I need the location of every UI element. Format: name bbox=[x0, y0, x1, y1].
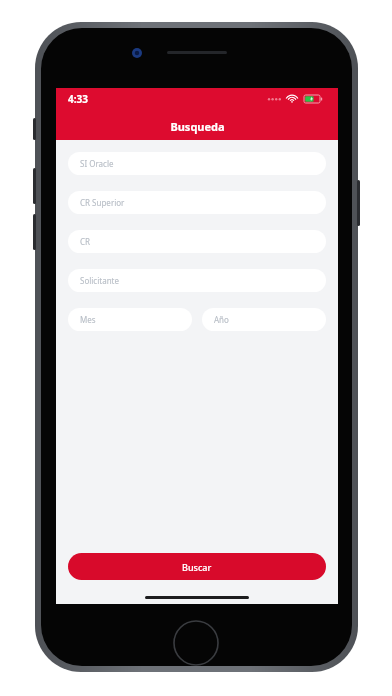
button[interactable]: CR Superior bbox=[68, 191, 326, 214]
staticText: SI Oracle bbox=[80, 158, 114, 169]
button[interactable]: Buscar bbox=[68, 553, 326, 580]
staticText: Busqueda bbox=[170, 119, 225, 134]
staticText: Buscar bbox=[182, 561, 212, 573]
button[interactable]: SI Oracle bbox=[68, 152, 326, 175]
staticText: Año bbox=[214, 314, 229, 325]
button[interactable]: CR bbox=[68, 230, 326, 253]
button[interactable]: Mes bbox=[68, 308, 192, 331]
staticText: Solicitante bbox=[80, 275, 119, 286]
button[interactable]: Año bbox=[202, 308, 326, 331]
button[interactable]: Solicitante bbox=[68, 269, 326, 292]
staticText: 4:33 bbox=[68, 92, 88, 106]
staticText: CR Superior bbox=[80, 197, 125, 208]
staticText: CR bbox=[80, 236, 91, 247]
staticText: Mes bbox=[80, 314, 96, 325]
